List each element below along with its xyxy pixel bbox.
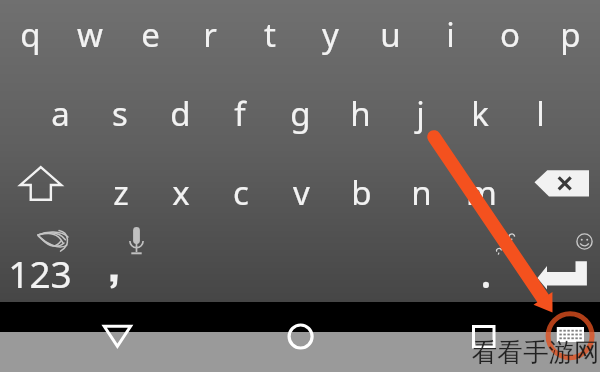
button[interactable]: Backspace: [530, 160, 594, 208]
button[interactable]: Voice input: [116, 222, 156, 260]
button[interactable]: Emoji: [568, 225, 600, 257]
button[interactable]: .: [446, 241, 526, 301]
staticText: n: [411, 170, 432, 215]
staticText: i: [446, 12, 455, 57]
staticText: 看看手游网: [472, 336, 600, 368]
button[interactable]: Shift: [10, 154, 70, 214]
staticText: j: [416, 91, 425, 136]
button[interactable]: z: [81, 162, 161, 222]
button[interactable]: e: [110, 4, 190, 64]
staticText: k: [471, 91, 489, 136]
staticText: y: [322, 12, 339, 57]
staticText: x: [172, 170, 190, 215]
button[interactable]: x: [141, 162, 221, 222]
button[interactable]: w: [50, 4, 130, 64]
staticText: l: [536, 91, 545, 136]
button[interactable]: s: [80, 83, 160, 143]
staticText: f: [234, 91, 246, 136]
button[interactable]: 123: [0, 243, 80, 303]
staticText: r: [203, 12, 217, 57]
button[interactable]: t: [230, 4, 310, 64]
button[interactable]: g: [260, 83, 340, 143]
staticText: w: [77, 12, 103, 57]
button[interactable]: y: [290, 4, 370, 64]
staticText: z: [113, 170, 129, 215]
button[interactable]: d: [140, 83, 220, 143]
button[interactable]: u: [350, 4, 430, 64]
button[interactable]: Recents: [460, 316, 508, 360]
button[interactable]: SwiftKey: [24, 225, 84, 257]
button[interactable]: p: [530, 4, 600, 64]
button[interactable]: Back: [92, 316, 144, 360]
button[interactable]: n: [381, 162, 461, 222]
button[interactable]: f: [200, 83, 280, 143]
button[interactable]: h: [320, 83, 400, 143]
button[interactable]: o: [470, 4, 550, 64]
staticText: e: [141, 12, 160, 57]
button[interactable]: v: [261, 162, 341, 222]
button[interactable]: j: [380, 83, 460, 143]
button[interactable]: r: [170, 4, 250, 64]
button[interactable]: Comma: [94, 252, 136, 300]
button[interactable]: b: [321, 162, 401, 222]
button[interactable]: Switch keyboard: [542, 308, 598, 364]
button[interactable]: a: [20, 83, 100, 143]
staticText: p: [560, 12, 581, 57]
staticText: d: [170, 91, 191, 136]
staticText: s: [112, 91, 128, 136]
staticText: o: [500, 12, 520, 57]
staticText: m: [466, 170, 497, 215]
button[interactable]: q: [0, 4, 70, 64]
staticText: .: [480, 243, 492, 300]
button[interactable]: m: [441, 162, 521, 222]
staticText: 123: [8, 248, 72, 298]
staticText: h: [350, 91, 371, 136]
button[interactable]: i: [410, 4, 490, 64]
staticText: a: [51, 91, 70, 136]
staticText: g: [290, 91, 311, 136]
staticText: v: [293, 170, 310, 215]
button[interactable]: c: [201, 162, 281, 222]
staticText: u: [380, 12, 401, 57]
button[interactable]: l: [500, 83, 580, 143]
staticText: b: [351, 170, 372, 215]
button[interactable]: Home: [276, 316, 326, 360]
staticText: q: [20, 12, 41, 57]
staticText: c: [233, 170, 249, 215]
staticText: t: [264, 12, 276, 57]
button[interactable]: Enter: [530, 255, 594, 297]
button[interactable]: k: [440, 83, 520, 143]
